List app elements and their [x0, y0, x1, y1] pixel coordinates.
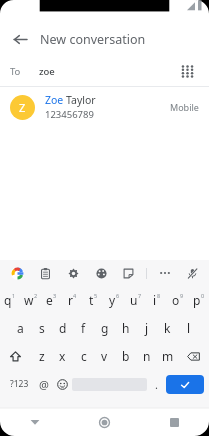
- button[interactable]: Google Assistant: [8, 264, 26, 282]
- staticText: New conversation: [40, 31, 146, 48]
- button[interactable]: .: [147, 370, 166, 398]
- staticText: 4: [73, 292, 77, 299]
- staticText: n: [143, 348, 151, 364]
- staticText: b: [122, 348, 130, 364]
- staticText: Z: [19, 100, 26, 115]
- button[interactable]: q: [0, 286, 20, 314]
- button[interactable]: x: [52, 342, 73, 370]
- staticText: v: [101, 348, 108, 364]
- button[interactable]: w: [20, 286, 41, 314]
- staticText: o: [172, 292, 180, 308]
- staticText: x: [59, 348, 66, 364]
- staticText: 1: [12, 292, 16, 299]
- staticText: 6: [116, 292, 120, 299]
- staticText: 9: [180, 292, 184, 299]
- button[interactable]: Settings: [64, 264, 82, 282]
- button[interactable]: l: [178, 314, 199, 342]
- button[interactable]: j: [136, 314, 157, 342]
- staticText: e: [46, 292, 53, 308]
- staticText: To: [10, 65, 21, 78]
- staticText: k: [164, 320, 171, 336]
- staticText: .: [155, 377, 158, 392]
- button[interactable]: m: [157, 342, 178, 370]
- button[interactable]: Recent apps: [139, 408, 209, 436]
- staticText: a: [17, 320, 24, 336]
- button[interactable]: r: [62, 286, 83, 314]
- button[interactable]: e: [41, 286, 62, 314]
- staticText: q: [4, 292, 12, 308]
- button[interactable]: Back: [0, 408, 69, 436]
- button[interactable]: i: [146, 286, 167, 314]
- button[interactable]: z: [31, 342, 52, 370]
- staticText: g: [101, 320, 109, 336]
- button[interactable]: d: [52, 314, 73, 342]
- staticText: 3: [53, 292, 57, 299]
- button[interactable]: f: [73, 314, 94, 342]
- button[interactable]: b: [115, 342, 136, 370]
- button[interactable]: Backspace: [178, 342, 209, 370]
- button[interactable]: c: [73, 342, 94, 370]
- staticText: r: [68, 292, 73, 308]
- staticText: t: [89, 292, 94, 308]
- button[interactable]: Themes: [92, 264, 110, 282]
- staticText: s: [39, 320, 45, 336]
- staticText: y: [109, 292, 116, 308]
- button[interactable]: Voice input off: [183, 264, 201, 282]
- button[interactable]: Shift: [0, 342, 31, 370]
- button[interactable]: More options: [156, 264, 174, 282]
- button[interactable]: Enter: [166, 375, 204, 394]
- button[interactable]: h: [115, 314, 136, 342]
- staticText: p: [193, 292, 201, 308]
- staticText: 5: [94, 292, 98, 299]
- staticText: z: [39, 348, 45, 364]
- button[interactable]: Z: [0, 87, 209, 127]
- button[interactable]: y: [104, 286, 125, 314]
- staticText: w: [24, 292, 34, 308]
- staticText: h: [122, 320, 130, 336]
- staticText: d: [59, 320, 67, 336]
- staticText: u: [130, 292, 138, 308]
- staticText: 0: [201, 292, 205, 299]
- button[interactable]: u: [125, 286, 146, 314]
- staticText: Zoe Taylor: [45, 93, 96, 107]
- staticText: 7: [138, 292, 142, 299]
- staticText: 123456789: [45, 108, 94, 121]
- button[interactable]: Back: [6, 25, 34, 53]
- staticText: i: [153, 292, 157, 308]
- staticText: 2: [34, 292, 38, 299]
- button[interactable]: k: [157, 314, 178, 342]
- button[interactable]: @: [34, 370, 53, 398]
- staticText: f: [81, 320, 86, 336]
- button[interactable]: g: [94, 314, 115, 342]
- button[interactable]: Emoji: [53, 370, 72, 398]
- staticText: @: [39, 377, 49, 392]
- staticText: zoe: [39, 65, 55, 78]
- button[interactable]: o: [167, 286, 188, 314]
- staticText: 8: [157, 292, 161, 299]
- staticText: m: [162, 348, 174, 364]
- button[interactable]: Stickers: [119, 264, 137, 282]
- button[interactable]: t: [83, 286, 104, 314]
- staticText: j: [145, 320, 149, 336]
- button[interactable]: Dialpad: [175, 59, 199, 83]
- button[interactable]: Home: [69, 408, 139, 436]
- button[interactable]: n: [136, 342, 157, 370]
- staticText: Mobile: [170, 101, 199, 113]
- button[interactable]: p: [188, 286, 209, 314]
- button[interactable]: s: [31, 314, 52, 342]
- button[interactable]: ?123: [5, 370, 34, 398]
- staticText: c: [81, 348, 87, 364]
- button[interactable]: v: [94, 342, 115, 370]
- button[interactable]: Clipboard: [36, 264, 54, 282]
- staticText: l: [187, 320, 191, 336]
- button[interactable]: a: [10, 314, 31, 342]
- staticText: ?123: [10, 378, 29, 390]
